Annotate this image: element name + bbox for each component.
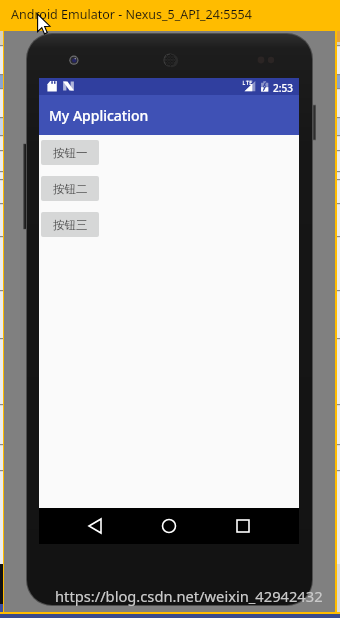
staticText: 按钮三 [53, 218, 88, 232]
staticText: 2:53 [273, 81, 293, 95]
button[interactable]: Home [151, 508, 187, 544]
button[interactable]: Recents [225, 508, 261, 544]
staticText: 按钮一 [53, 146, 88, 160]
button[interactable]: 按钮二 [41, 176, 99, 201]
staticText: Android Emulator - Nexus_5_API_24:5554 [11, 6, 252, 23]
staticText: https://blog.csdn.net/weixin_42942432 [55, 586, 323, 606]
staticText: 按钮二 [53, 182, 88, 196]
staticText: My Application [49, 106, 149, 125]
button[interactable]: 按钮一 [41, 140, 99, 165]
button[interactable]: Back [77, 508, 113, 544]
button[interactable]: 按钮三 [41, 212, 99, 237]
